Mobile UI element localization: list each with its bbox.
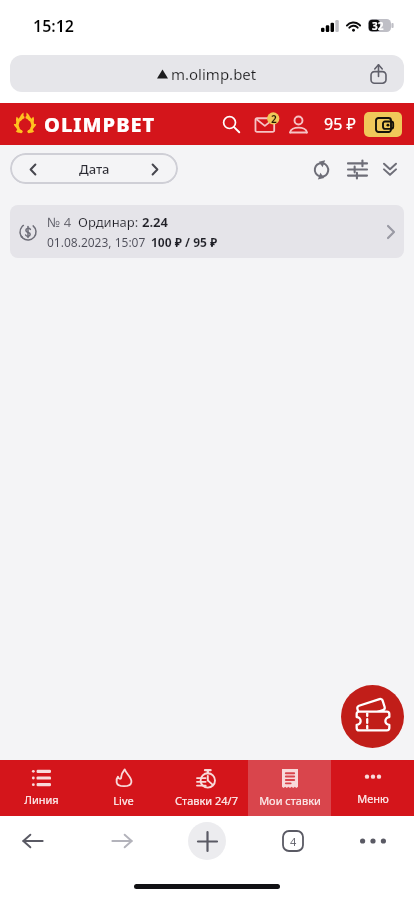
button[interactable]: Betslip — [341, 685, 404, 748]
button[interactable]: Tabs — [280, 828, 306, 854]
staticText: 95 ₽ — [324, 113, 356, 135]
staticText: Ординар: — [78, 213, 142, 231]
button[interactable]: Search — [217, 110, 245, 138]
button[interactable]: Дата — [10, 153, 178, 184]
staticText: m.olimp.bet — [171, 64, 257, 84]
button[interactable]: Линия — [0, 760, 82, 816]
staticText: 100 ₽ / 95 ₽ — [151, 234, 218, 250]
button[interactable]: Back — [13, 821, 53, 861]
staticText: Дата — [79, 160, 110, 178]
button[interactable]: № 4 — [10, 205, 404, 258]
button[interactable]: Account — [285, 111, 311, 137]
staticText: 2 — [271, 112, 277, 126]
staticText: Мои ставки — [259, 793, 321, 808]
staticText: Линия — [24, 792, 59, 807]
staticText: Live — [113, 793, 134, 808]
button[interactable]: Ставки 24/7 — [165, 760, 248, 816]
staticText: 01.08.2023, 15:07 — [47, 234, 146, 250]
button[interactable]: Filters — [343, 155, 371, 183]
staticText: № 4 — [47, 213, 72, 231]
button[interactable]: m.olimp.bet — [10, 55, 404, 92]
button[interactable]: More — [353, 821, 393, 861]
staticText: 4 — [290, 834, 297, 849]
button[interactable]: New tab — [188, 822, 226, 860]
staticText: 32 — [372, 19, 384, 32]
button[interactable]: Forward — [102, 821, 142, 861]
staticText: Меню — [357, 791, 389, 806]
staticText: Ставки 24/7 — [175, 793, 238, 808]
staticText: 15:12 — [33, 15, 75, 37]
button[interactable]: Refresh — [307, 155, 335, 183]
button[interactable]: Меню — [331, 760, 414, 816]
button[interactable]: Мои ставки — [248, 760, 331, 816]
staticText: 2.24 — [142, 213, 168, 231]
button[interactable]: Share — [364, 60, 392, 88]
button[interactable]: Messages — [254, 111, 280, 137]
button[interactable]: Live — [82, 760, 165, 816]
staticText: OLIMPBET — [44, 111, 156, 138]
button[interactable]: Wallet — [364, 112, 402, 137]
button[interactable]: Expand — [377, 156, 403, 182]
